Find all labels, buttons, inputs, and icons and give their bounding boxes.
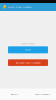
staticText: Lucky Numbers — [34, 93, 49, 95]
staticText: Choose country — [21, 42, 35, 45]
staticText: GENERATE LUCKY NUMBERS — [15, 61, 40, 64]
button[interactable]: Results — [0, 88, 28, 100]
staticText: Lottery Ticket Numbers — [8, 6, 32, 8]
staticText: Results — [10, 93, 17, 95]
staticText: Select — [25, 48, 31, 51]
button[interactable]: Select — [8, 46, 48, 53]
button[interactable]: Lucky Numbers — [28, 88, 56, 100]
button[interactable]: GENERATE LUCKY NUMBERS — [8, 59, 48, 66]
